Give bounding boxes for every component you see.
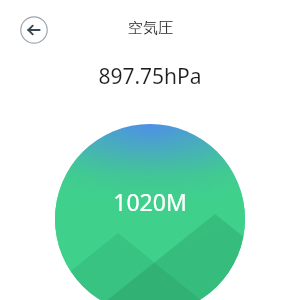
- staticText: 1020M: [113, 186, 187, 217]
- staticText: 空気圧: [128, 19, 173, 38]
- button[interactable]: Back: [20, 16, 48, 44]
- staticText: 897.75hPa: [98, 62, 202, 91]
